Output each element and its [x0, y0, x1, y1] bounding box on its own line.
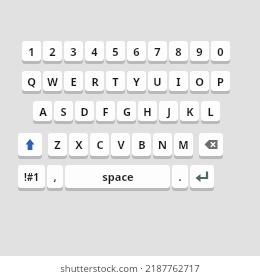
button[interactable]: 9	[190, 41, 209, 63]
staticText: K	[186, 104, 194, 119]
staticText: .	[178, 169, 182, 184]
staticText: O	[195, 74, 204, 89]
button[interactable]: .	[172, 165, 188, 190]
staticText: S	[60, 104, 67, 119]
staticText: F	[102, 104, 109, 119]
staticText: Z	[54, 137, 61, 152]
staticText: ,	[53, 169, 57, 184]
button[interactable]: 0	[211, 41, 230, 63]
staticText: J	[167, 104, 171, 119]
staticText: C	[96, 137, 104, 152]
button[interactable]: R	[85, 71, 104, 93]
button[interactable]: !#1	[18, 165, 45, 190]
button[interactable]: X	[69, 133, 88, 158]
staticText: B	[138, 137, 146, 152]
staticText: N	[158, 137, 167, 152]
button[interactable]: Enter	[190, 165, 214, 190]
button[interactable]: 5	[106, 41, 125, 63]
button[interactable]: 7	[148, 41, 167, 63]
button[interactable]: L	[201, 101, 220, 123]
button[interactable]: S	[54, 101, 73, 123]
button[interactable]: O	[190, 71, 209, 93]
staticText: 7	[154, 44, 161, 59]
staticText: 2	[49, 44, 56, 59]
staticText: !#1	[24, 170, 39, 184]
staticText: W	[47, 74, 58, 89]
button[interactable]: F	[96, 101, 115, 123]
button[interactable]: Shift	[18, 133, 42, 158]
staticText: H	[143, 104, 152, 119]
button[interactable]: N	[153, 133, 172, 158]
button[interactable]: C	[90, 133, 109, 158]
button[interactable]: ,	[47, 165, 63, 190]
button[interactable]: J	[159, 101, 178, 123]
button[interactable]: T	[106, 71, 125, 93]
button[interactable]: Backspace	[199, 133, 223, 158]
button[interactable]: W	[43, 71, 62, 93]
staticText: P	[217, 74, 224, 89]
button[interactable]: G	[117, 101, 136, 123]
staticText: shutterstock.com · 2187762717	[60, 262, 200, 275]
button[interactable]: 8	[169, 41, 188, 63]
button[interactable]: E	[64, 71, 83, 93]
staticText: L	[207, 104, 214, 119]
button[interactable]: M	[174, 133, 193, 158]
button[interactable]: V	[111, 133, 130, 158]
staticText: G	[123, 104, 131, 119]
button[interactable]: K	[180, 101, 199, 123]
staticText: V	[117, 137, 125, 152]
button[interactable]: 1	[22, 41, 41, 63]
staticText: U	[153, 74, 162, 89]
staticText: 6	[133, 44, 140, 59]
staticText: 3	[70, 44, 77, 59]
staticText: 4	[91, 44, 98, 59]
button[interactable]: 3	[64, 41, 83, 63]
button[interactable]: I	[169, 71, 188, 93]
staticText: A	[39, 104, 47, 119]
button[interactable]: P	[211, 71, 230, 93]
staticText: Y	[133, 74, 140, 89]
staticText: E	[70, 74, 77, 89]
staticText: 1	[28, 44, 35, 59]
staticText: 5	[112, 44, 119, 59]
button[interactable]: Z	[48, 133, 67, 158]
button[interactable]: U	[148, 71, 167, 93]
staticText: 9	[196, 44, 203, 59]
button[interactable]: H	[138, 101, 157, 123]
staticText: 8	[175, 44, 182, 59]
button[interactable]: 6	[127, 41, 146, 63]
staticText: Q	[27, 74, 36, 89]
button[interactable]: A	[33, 101, 52, 123]
staticText: D	[80, 104, 89, 119]
button[interactable]: 2	[43, 41, 62, 63]
staticText: R	[91, 74, 99, 89]
staticText: 0	[217, 44, 224, 59]
button[interactable]: space	[65, 165, 170, 190]
button[interactable]: B	[132, 133, 151, 158]
staticText: space	[102, 169, 134, 184]
staticText: I	[176, 74, 181, 89]
button[interactable]: Q	[22, 71, 41, 93]
staticText: M	[178, 137, 189, 152]
button[interactable]: 4	[85, 41, 104, 63]
button[interactable]: D	[75, 101, 94, 123]
button[interactable]: Y	[127, 71, 146, 93]
staticText: X	[75, 137, 83, 152]
staticText: T	[112, 74, 119, 89]
